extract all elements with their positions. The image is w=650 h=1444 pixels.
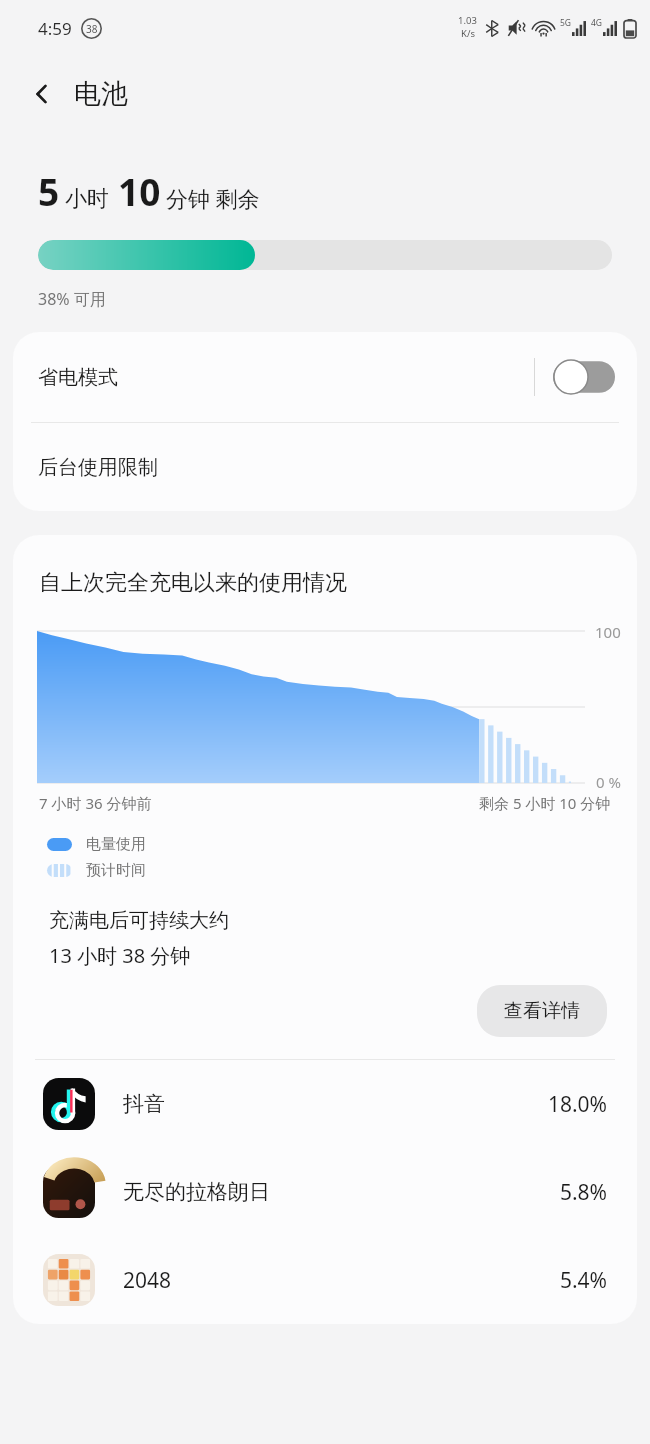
staticText: 0 % [596, 772, 621, 792]
staticText: 5.4% [517, 1266, 607, 1295]
button[interactable]: 省电模式 [13, 332, 637, 422]
staticText: 38% 可用 [38, 288, 106, 310]
staticText: 5.8% [517, 1178, 607, 1207]
staticText: K/s [461, 27, 475, 40]
staticText: 电量使用 [86, 835, 146, 854]
staticText: 无尽的拉格朗日 [123, 1179, 517, 1205]
staticText: 7 小时 36 分钟前 [39, 793, 152, 813]
staticText: 13 小时 38 分钟 [49, 942, 191, 969]
staticText: 38 [86, 22, 98, 36]
button[interactable]: Back [18, 70, 66, 118]
staticText: 查看详情 [504, 999, 580, 1023]
staticText: 5G [560, 17, 572, 29]
button[interactable]: 省电模式 switch [553, 359, 615, 395]
button[interactable]: 后台使用限制 [13, 423, 637, 511]
staticText: 预计时间 [86, 861, 146, 880]
staticText: 充满电后可持续大约 [49, 908, 229, 933]
staticText: 2048 [123, 1266, 517, 1295]
staticText: 5 [38, 166, 60, 216]
button[interactable]: 2048 [13, 1236, 637, 1324]
staticText: 100 [595, 622, 621, 642]
staticText: 后台使用限制 [38, 455, 158, 480]
staticText: 自上次完全充电以来的使用情况 [39, 569, 347, 597]
staticText: 电池 [74, 77, 128, 111]
staticText: 10 [118, 166, 161, 216]
button[interactable]: 抖音 [13, 1060, 637, 1148]
staticText: 剩余 5 小时 10 分钟 [479, 793, 611, 813]
button[interactable]: 无尽的拉格朗日 [13, 1148, 637, 1236]
staticText: 4:59 [38, 17, 72, 40]
staticText: 抖音 [123, 1091, 517, 1117]
staticText: 1.03 [458, 14, 477, 27]
staticText: 小时 [65, 185, 109, 213]
button[interactable]: 查看详情 [477, 985, 607, 1037]
staticText: 18.0% [517, 1090, 607, 1119]
staticText: 分钟 剩余 [166, 183, 260, 213]
staticText: 4G [591, 17, 603, 29]
staticText: 省电模式 [38, 365, 534, 390]
